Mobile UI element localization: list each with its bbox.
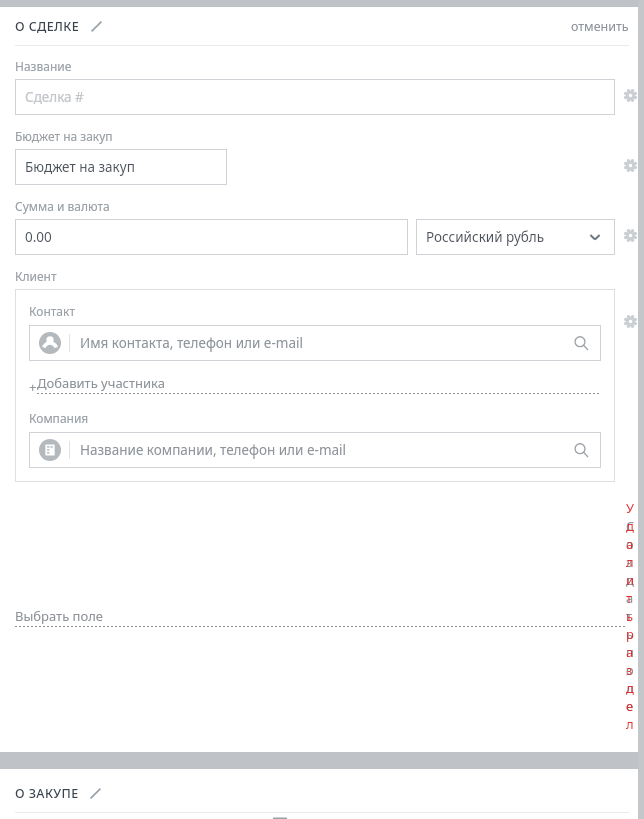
staticText: 0.00 — [25, 228, 52, 246]
button[interactable]: Настройки поля — [619, 310, 641, 332]
button[interactable]: Редактировать название раздела — [86, 784, 104, 802]
button[interactable]: Искать — [571, 440, 591, 460]
button[interactable]: Раскрыть список валют — [585, 227, 605, 247]
staticText: Бюджет на закуп — [15, 128, 113, 144]
staticText: Контакт — [29, 303, 75, 319]
staticText: О СДЕЛКЕ — [15, 18, 80, 35]
button[interactable]: Имя контакта, телефон или e-mail — [29, 325, 601, 361]
staticText: Сделка # — [25, 88, 84, 106]
staticText: Название — [15, 58, 72, 74]
button[interactable]: Искать — [571, 333, 591, 353]
button[interactable]: Бюджет на закуп — [15, 149, 227, 185]
staticText: отменить — [571, 18, 629, 35]
staticText: О ЗАКУПЕ — [15, 785, 79, 802]
staticText: + — [29, 378, 37, 396]
button[interactable]: 0.00 — [15, 219, 408, 255]
button[interactable]: отменить — [571, 18, 629, 35]
staticText: Компания — [29, 410, 89, 426]
staticText: Добавить участника — [37, 374, 165, 392]
button[interactable]: Сделка # — [15, 79, 615, 115]
button[interactable]: Российский рубль — [416, 219, 615, 255]
button[interactable]: Настройки поля — [619, 224, 641, 246]
button[interactable]: Добавить участника — [37, 373, 601, 396]
staticText: Выбрать поле — [15, 607, 103, 625]
staticText: Название компании, телефон или e-mail — [80, 441, 571, 459]
button[interactable]: Настройки поля — [619, 154, 641, 176]
button[interactable]: Название компании, телефон или e-mail — [29, 432, 601, 468]
button[interactable]: Редактировать название раздела — [87, 17, 105, 35]
staticText: Бюджет на закуп — [25, 158, 135, 176]
staticText: Сумма и валюта — [15, 198, 110, 214]
button[interactable]: Настройки поля — [619, 84, 641, 106]
staticText: Имя контакта, телефон или e-mail — [80, 334, 571, 352]
staticText: Клиент — [15, 268, 57, 284]
button[interactable]: Выбрать поле — [15, 606, 626, 629]
staticText: Российский рубль — [426, 228, 585, 246]
